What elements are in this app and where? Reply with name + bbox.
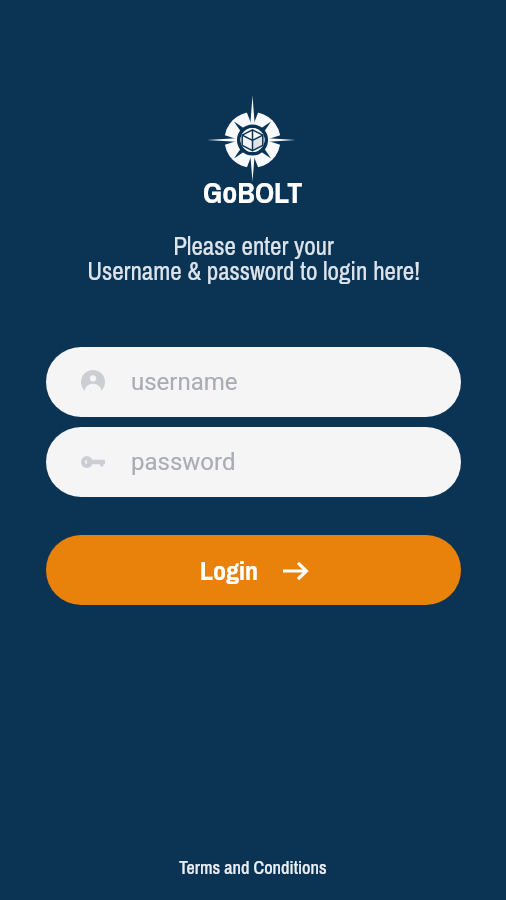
button[interactable]: password [46, 427, 461, 497]
staticText: password [131, 448, 236, 476]
staticText: username [131, 368, 238, 396]
staticText: GoBOLT [203, 172, 303, 212]
staticText: Terms and Conditions [179, 855, 327, 879]
button[interactable]: Terms and Conditions [171, 851, 335, 883]
button[interactable]: Login [46, 535, 461, 605]
staticText: Please enter your Username & password to… [87, 229, 420, 288]
staticText: Login [200, 553, 259, 588]
button[interactable]: username [46, 347, 461, 417]
